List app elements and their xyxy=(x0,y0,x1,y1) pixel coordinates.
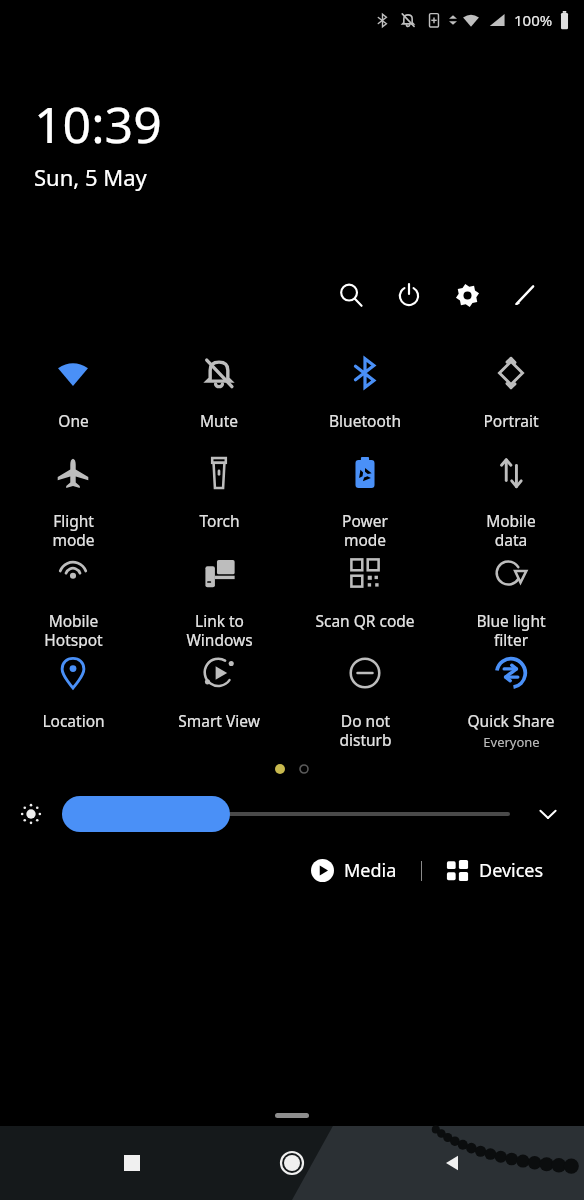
staticText: One xyxy=(58,410,89,431)
button[interactable]: Location xyxy=(0,648,146,756)
button[interactable]: Scan QR code xyxy=(292,548,438,648)
staticText: Scan QR code xyxy=(315,610,415,631)
button[interactable]: Back xyxy=(424,1135,480,1191)
button[interactable]: Home xyxy=(264,1135,320,1191)
staticText: Smart View xyxy=(178,710,260,731)
button[interactable]: One xyxy=(0,348,146,448)
button[interactable]: Edit xyxy=(496,266,554,324)
staticText: Power mode xyxy=(342,510,388,548)
button[interactable]: Blue light filter xyxy=(438,548,584,648)
button[interactable]: Quick Share xyxy=(438,648,584,756)
staticText: Link to Windows xyxy=(186,610,253,648)
staticText: Media xyxy=(344,858,397,883)
button[interactable]: Expand xyxy=(18,792,566,836)
button[interactable]: Power xyxy=(380,266,438,324)
button[interactable]: Smart View xyxy=(146,648,292,756)
staticText: Mute xyxy=(200,410,238,431)
button[interactable]: Flight mode xyxy=(0,448,146,548)
staticText: Flight mode xyxy=(52,510,95,548)
staticText: Quick Share xyxy=(467,710,555,731)
button[interactable]: Torch xyxy=(146,448,292,548)
button[interactable]: Bluetooth xyxy=(292,348,438,448)
button[interactable]: Power mode xyxy=(292,448,438,548)
staticText: Portrait xyxy=(483,410,539,431)
button[interactable]: Expand xyxy=(530,796,566,832)
button[interactable]: Mobile data xyxy=(438,448,584,548)
button[interactable]: Search xyxy=(322,266,380,324)
staticText: Bluetooth xyxy=(329,410,401,431)
staticText: Sun, 5 May xyxy=(34,162,147,192)
staticText: Do not disturb xyxy=(339,710,392,751)
staticText: 10:39 xyxy=(34,90,162,158)
staticText: Location xyxy=(42,710,105,731)
button[interactable]: Devices xyxy=(440,852,550,889)
button[interactable]: Recents xyxy=(104,1135,160,1191)
button[interactable]: Settings xyxy=(438,266,496,324)
staticText: Devices xyxy=(479,858,544,883)
staticText: Mobile Hotspot xyxy=(44,610,103,648)
button[interactable]: Do not disturb xyxy=(292,648,438,756)
button[interactable]: Link to Windows xyxy=(146,548,292,648)
staticText: Blue light filter xyxy=(476,610,546,648)
button[interactable]: Mobile Hotspot xyxy=(0,548,146,648)
staticText: 100% xyxy=(514,10,553,30)
staticText: Torch xyxy=(199,510,240,531)
staticText: Everyone xyxy=(483,733,540,751)
button[interactable]: Media xyxy=(305,852,403,889)
button[interactable]: Portrait xyxy=(438,348,584,448)
button[interactable]: Mute xyxy=(146,348,292,448)
staticText: Mobile data xyxy=(486,510,536,548)
